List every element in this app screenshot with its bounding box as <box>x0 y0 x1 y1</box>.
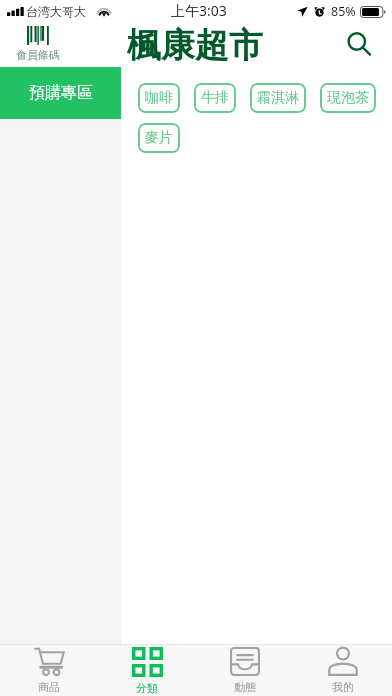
staticText: 麥片 <box>145 129 173 147</box>
staticText: 商品 <box>38 680 60 694</box>
staticText: 預購專區 <box>29 83 93 103</box>
staticText: 咖啡 <box>145 89 173 107</box>
button[interactable]: 現泡茶 <box>320 83 376 113</box>
staticText: 會員條碼 <box>16 48 60 62</box>
staticText: 上午3:03 <box>171 1 227 20</box>
staticText: 85% <box>331 3 356 20</box>
button[interactable]: 牛排 <box>194 83 236 113</box>
staticText: 楓康超市 <box>127 24 263 67</box>
staticText: 動態 <box>234 680 256 694</box>
button[interactable]: 楓康超市 <box>127 24 263 67</box>
button[interactable]: 我的 <box>294 645 392 696</box>
staticText: 牛排 <box>201 89 229 107</box>
button[interactable]: 預購專區 <box>0 67 121 119</box>
button[interactable]: 商品 <box>0 645 98 696</box>
staticText: 我的 <box>332 680 354 694</box>
button[interactable]: 動態 <box>196 645 294 696</box>
button[interactable]: 會員條碼 <box>0 22 121 67</box>
button[interactable]: 分類 <box>98 645 196 696</box>
staticText: 台湾大哥大 <box>26 4 86 19</box>
button[interactable]: 咖啡 <box>138 83 180 113</box>
staticText: 霜淇淋 <box>257 89 299 107</box>
button[interactable]: 霜淇淋 <box>250 83 306 113</box>
staticText: 現泡茶 <box>327 89 369 107</box>
button[interactable]: 麥片 <box>138 123 180 153</box>
staticText: 分類 <box>136 681 158 695</box>
button[interactable]: Search <box>343 28 377 62</box>
